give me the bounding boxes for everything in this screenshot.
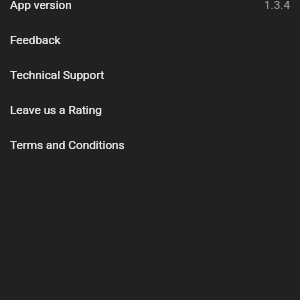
- button[interactable]: App version: [0, 0, 300, 22]
- staticText: Leave us a Rating: [10, 103, 102, 117]
- staticText: Technical Support: [10, 68, 105, 82]
- staticText: App version: [10, 0, 72, 12]
- button[interactable]: Terms and Conditions: [0, 127, 300, 162]
- staticText: 1.3.4: [263, 0, 290, 12]
- staticText: Terms and Conditions: [10, 138, 125, 152]
- button[interactable]: Feedback: [0, 22, 300, 57]
- button[interactable]: Technical Support: [0, 57, 300, 92]
- button[interactable]: Leave us a Rating: [0, 92, 300, 127]
- staticText: Feedback: [10, 33, 61, 47]
